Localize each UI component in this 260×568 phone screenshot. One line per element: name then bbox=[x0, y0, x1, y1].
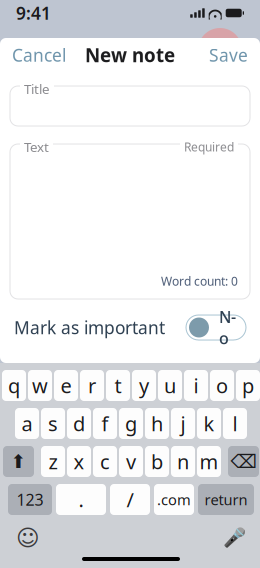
staticText: c bbox=[100, 448, 110, 475]
staticText: Save bbox=[209, 43, 248, 66]
staticText: New note bbox=[85, 43, 175, 67]
staticText: Title bbox=[24, 80, 50, 98]
button[interactable]: Mark as important, off bbox=[186, 315, 246, 340]
staticText: 9:41 bbox=[16, 1, 51, 24]
button[interactable]: .com bbox=[154, 484, 194, 515]
button[interactable]: return bbox=[198, 484, 254, 515]
staticText: / bbox=[126, 486, 133, 513]
staticText: ⌫ bbox=[230, 451, 256, 472]
button[interactable]: s bbox=[41, 408, 65, 439]
button[interactable]: n bbox=[171, 446, 195, 477]
button[interactable]: a bbox=[15, 408, 39, 439]
staticText: i bbox=[193, 372, 198, 399]
staticText: m bbox=[199, 448, 218, 475]
button[interactable]: v bbox=[119, 446, 143, 477]
staticText: k bbox=[203, 410, 214, 437]
button[interactable]: u bbox=[158, 370, 182, 401]
staticText: 🎤 bbox=[222, 527, 245, 549]
staticText: y bbox=[139, 372, 149, 399]
button[interactable]: x bbox=[67, 446, 91, 477]
staticText: h bbox=[151, 410, 163, 437]
button[interactable]: j bbox=[171, 408, 195, 439]
staticText: 123 bbox=[16, 489, 43, 510]
button[interactable]: p bbox=[236, 370, 260, 401]
button[interactable]: i bbox=[184, 370, 208, 401]
staticText: b bbox=[151, 448, 163, 475]
staticText: ☺ bbox=[16, 525, 40, 551]
staticText: s bbox=[48, 410, 58, 437]
button[interactable]: / bbox=[110, 484, 150, 515]
button[interactable]: c bbox=[93, 446, 117, 477]
staticText: d bbox=[73, 410, 85, 437]
staticText: z bbox=[48, 448, 57, 475]
staticText: ⬆ bbox=[10, 451, 26, 472]
button[interactable]: t bbox=[106, 370, 130, 401]
button[interactable]: k bbox=[197, 408, 221, 439]
button[interactable]: Shift bbox=[3, 446, 34, 477]
button[interactable]: 123 bbox=[8, 484, 52, 515]
button[interactable]: Save bbox=[197, 35, 260, 74]
staticText: g bbox=[125, 410, 137, 437]
staticText: w bbox=[32, 372, 48, 399]
button[interactable]: l bbox=[223, 408, 247, 439]
staticText: return bbox=[204, 490, 247, 509]
staticText: Required bbox=[184, 139, 234, 155]
button[interactable]: q bbox=[2, 370, 26, 401]
button[interactable]: r bbox=[80, 370, 104, 401]
button[interactable]: y bbox=[132, 370, 156, 401]
staticText: p bbox=[242, 372, 254, 399]
staticText: n bbox=[177, 448, 189, 475]
staticText: Mark as important bbox=[14, 316, 165, 339]
staticText: j bbox=[180, 410, 185, 437]
button[interactable]: m bbox=[197, 446, 221, 477]
button[interactable]: w bbox=[28, 370, 52, 401]
staticText: Text bbox=[24, 138, 49, 156]
button[interactable]: b bbox=[145, 446, 169, 477]
staticText: x bbox=[73, 448, 84, 475]
staticText: o bbox=[216, 372, 228, 399]
button[interactable]: Dictation bbox=[221, 525, 247, 551]
button[interactable]: e bbox=[54, 370, 78, 401]
staticText: t bbox=[114, 372, 121, 399]
staticText: f bbox=[101, 410, 108, 437]
button[interactable]: Title bbox=[0, 86, 260, 126]
staticText: l bbox=[232, 410, 237, 437]
button[interactable]: Text bbox=[0, 144, 260, 299]
staticText: Cancel bbox=[12, 43, 66, 66]
button[interactable]: o bbox=[210, 370, 234, 401]
staticText: e bbox=[60, 372, 71, 399]
button[interactable]: g bbox=[119, 408, 143, 439]
staticText: r bbox=[88, 372, 96, 399]
staticText: a bbox=[21, 410, 32, 437]
button[interactable]: z bbox=[41, 446, 65, 477]
staticText: .com bbox=[157, 490, 191, 509]
staticText: . bbox=[78, 486, 83, 513]
button[interactable]: . bbox=[56, 484, 106, 515]
button[interactable]: Emoji bbox=[15, 525, 41, 551]
button[interactable]: d bbox=[67, 408, 91, 439]
staticText: q bbox=[8, 372, 20, 399]
staticText: Word count: 0 bbox=[161, 273, 238, 289]
button[interactable]: Delete bbox=[228, 446, 259, 477]
button[interactable]: Cancel bbox=[0, 35, 78, 74]
staticText: v bbox=[126, 448, 136, 475]
staticText: u bbox=[164, 372, 176, 399]
staticText: No bbox=[219, 306, 236, 349]
button[interactable]: h bbox=[145, 408, 169, 439]
button[interactable]: f bbox=[93, 408, 117, 439]
